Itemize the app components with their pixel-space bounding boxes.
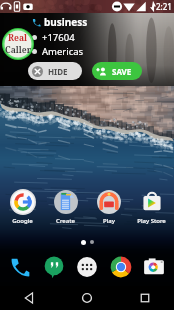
staticText: Play Store <box>137 217 166 225</box>
staticText: Real <box>8 32 28 44</box>
button[interactable]: Play Store <box>130 189 173 225</box>
button[interactable]: Home <box>76 287 98 309</box>
button[interactable]: Google <box>1 189 44 225</box>
staticText: 2:21 <box>156 1 172 12</box>
button[interactable]: Play <box>87 189 130 225</box>
staticText: HIDE <box>48 66 68 77</box>
button[interactable]: Phone <box>7 254 33 280</box>
button[interactable]: Camera <box>141 254 167 280</box>
staticText: business <box>44 15 88 29</box>
staticText: Create <box>56 217 75 225</box>
staticText: Google <box>12 217 33 225</box>
staticText: Americas <box>42 45 84 58</box>
button[interactable]: Back <box>18 287 40 309</box>
button[interactable]: Chrome <box>108 254 134 280</box>
button[interactable]: SAVE <box>92 62 142 80</box>
button[interactable]: All apps <box>74 254 100 280</box>
button[interactable]: HIDE <box>28 62 82 80</box>
button[interactable]: Create <box>44 189 87 225</box>
button[interactable]: Hangouts <box>41 254 67 280</box>
staticText: SAVE <box>112 66 132 77</box>
staticText: Play <box>103 217 115 225</box>
staticText: +17604 <box>42 31 75 44</box>
button[interactable]: Recents <box>134 287 156 309</box>
staticText: Caller <box>5 44 32 56</box>
